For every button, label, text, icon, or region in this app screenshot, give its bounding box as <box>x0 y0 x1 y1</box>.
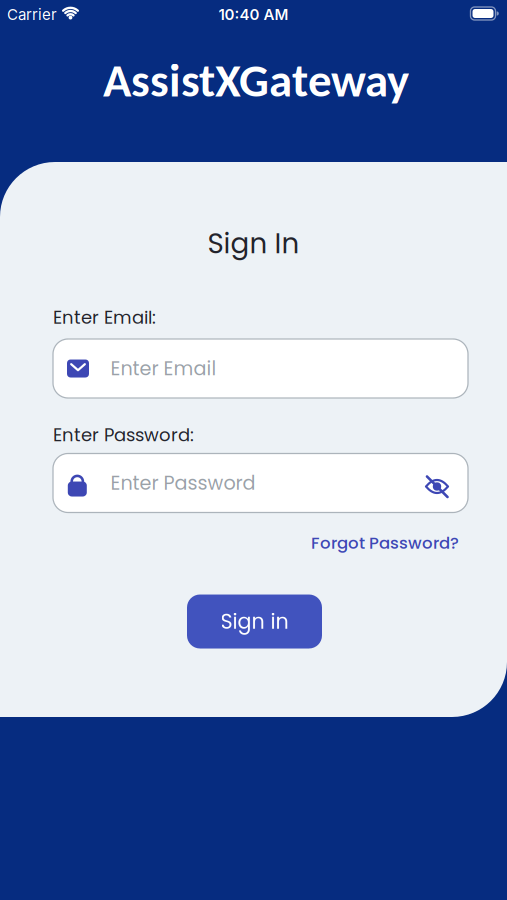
button[interactable]: Sign in <box>187 594 322 648</box>
staticText: Enter Email: <box>53 305 156 330</box>
staticText: Carrier <box>7 5 57 24</box>
staticText: 10:40 AM <box>218 5 288 24</box>
button[interactable]: Enter Password <box>53 453 468 512</box>
staticText: AssistXGateway <box>103 52 409 109</box>
button[interactable]: Forgot Password? <box>311 531 459 554</box>
button[interactable]: Enter Email <box>53 339 468 398</box>
staticText: Enter Password: <box>53 422 194 448</box>
staticText: Enter Password <box>110 470 255 496</box>
button[interactable] <box>417 466 457 506</box>
staticText: Sign In <box>207 224 299 263</box>
staticText: Enter Email <box>110 355 216 382</box>
staticText: Forgot Password? <box>311 531 459 554</box>
staticText: Sign in <box>220 607 288 636</box>
